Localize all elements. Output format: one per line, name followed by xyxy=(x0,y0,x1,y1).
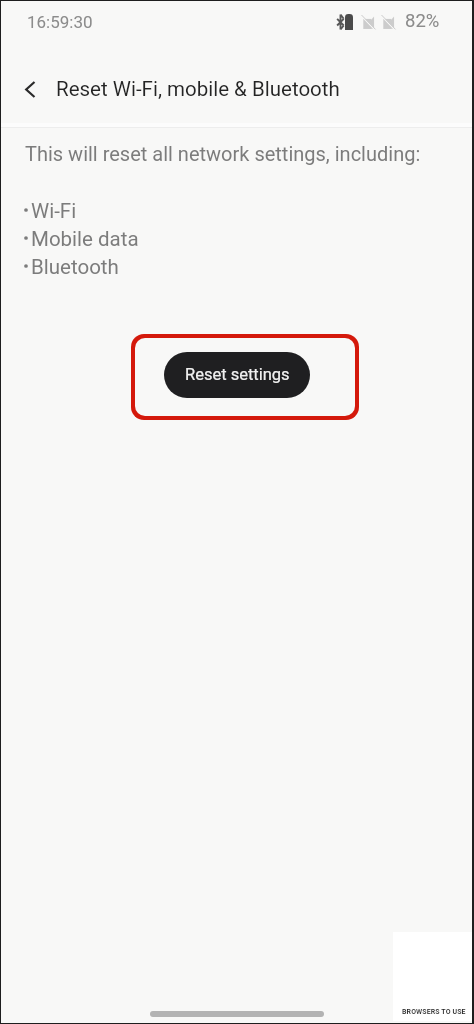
staticText: Bluetooth xyxy=(31,255,119,279)
staticText: 82% xyxy=(405,10,440,32)
staticText: Mobile data xyxy=(31,227,139,251)
button[interactable]: Reset settings xyxy=(164,352,310,398)
staticText: Reset settings xyxy=(185,365,290,384)
button[interactable]: Back xyxy=(6,65,54,113)
staticText: Wi-Fi xyxy=(31,199,77,223)
staticText: BROWSERS TO USE xyxy=(402,1008,472,1016)
staticText: This will reset all network settings, in… xyxy=(25,142,421,165)
staticText: 16:59:30 xyxy=(27,12,93,32)
staticText: Reset Wi-Fi, mobile & Bluetooth xyxy=(56,77,340,101)
